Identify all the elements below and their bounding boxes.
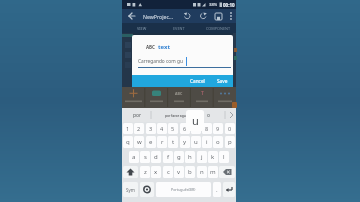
button[interactable]: p [225, 136, 235, 148]
staticText: g [177, 153, 181, 161]
staticText: NewProjec... [143, 13, 174, 20]
button[interactable]: s [140, 151, 150, 163]
button[interactable]: c [163, 166, 173, 178]
button[interactable]: ABC [170, 88, 188, 98]
staticText: i [206, 138, 208, 146]
staticText: o [216, 138, 220, 146]
button[interactable]: VIEW [133, 24, 151, 32]
button[interactable]: z [140, 166, 150, 178]
button[interactable]: u [191, 136, 201, 148]
button[interactable]: o [213, 136, 223, 148]
staticText: m [210, 168, 216, 176]
button[interactable] [212, 10, 224, 23]
button[interactable]: Cancel [185, 75, 209, 87]
button[interactable]: r [157, 136, 167, 148]
staticText: text [158, 43, 171, 51]
button[interactable]: EVENT [168, 24, 190, 32]
button[interactable]: Save [214, 75, 230, 87]
staticText: ABC [146, 44, 155, 50]
button[interactable]: m [208, 166, 218, 178]
button[interactable]: b [185, 166, 195, 178]
staticText: o [207, 112, 211, 119]
button[interactable] [223, 182, 235, 197]
button[interactable]: g [174, 151, 184, 163]
button[interactable]: k [208, 151, 218, 163]
button[interactable]: T [195, 88, 209, 98]
staticText: 3 [149, 125, 153, 132]
button[interactable]: Sym [123, 182, 138, 197]
button[interactable] [140, 182, 154, 197]
staticText: 8 [205, 125, 209, 132]
button[interactable] [226, 10, 236, 23]
button[interactable]: 7 [191, 123, 201, 134]
staticText: x [154, 168, 158, 176]
staticText: 9 [216, 125, 220, 132]
staticText: s [144, 153, 147, 161]
button[interactable]: 3 [146, 123, 156, 134]
staticText: p [228, 138, 232, 146]
button[interactable]: 8 [202, 123, 212, 134]
button[interactable]: 9 [213, 123, 223, 134]
staticText: h [188, 153, 192, 161]
staticText: f [167, 153, 170, 161]
staticText: u [192, 113, 199, 128]
staticText: EVENT [173, 26, 185, 31]
button[interactable]: q [123, 136, 133, 148]
staticText: T [201, 90, 204, 97]
button[interactable]: w [134, 136, 144, 148]
button[interactable]: n [197, 166, 207, 178]
staticText: Carregando com gu [138, 58, 183, 65]
button[interactable]: e [146, 136, 156, 148]
staticText: w [137, 138, 142, 146]
button[interactable]: 1 [123, 123, 133, 134]
button[interactable] [197, 10, 209, 23]
button[interactable]: o [203, 109, 215, 121]
staticText: 00:10 [223, 2, 235, 8]
button[interactable] [219, 166, 235, 178]
staticText: ABC [175, 91, 183, 96]
button[interactable]: 2 [134, 123, 144, 134]
staticText: d [154, 153, 158, 161]
staticText: n [200, 168, 204, 176]
button[interactable]: . [213, 182, 221, 197]
staticText: b [188, 168, 192, 176]
button[interactable]: COMPONENT [202, 24, 234, 32]
staticText: VIEW [137, 26, 147, 31]
button[interactable]: t [168, 136, 178, 148]
button[interactable]: 4 [157, 123, 167, 134]
button[interactable]: 5 [168, 123, 178, 134]
button[interactable]: i [202, 136, 212, 148]
button[interactable] [123, 166, 138, 178]
button[interactable]: l [219, 151, 229, 163]
staticText: 2 [137, 125, 141, 132]
button[interactable]: d [151, 151, 161, 163]
button[interactable] [181, 10, 193, 23]
staticText: . [216, 186, 218, 194]
staticText: c [167, 168, 170, 176]
staticText: q [126, 138, 130, 146]
staticText: Cancel [190, 78, 205, 84]
button[interactable]: Português(BR) [156, 182, 211, 197]
button[interactable]: x [151, 166, 161, 178]
staticText: y [183, 138, 187, 146]
button[interactable]: j [197, 151, 207, 163]
staticText: z [144, 168, 147, 176]
staticText: t [172, 138, 175, 146]
button[interactable]: f [163, 151, 173, 163]
button[interactable]: 0 [225, 123, 235, 134]
button[interactable]: por favor aguard [152, 109, 204, 121]
staticText: Sym [126, 187, 135, 193]
button[interactable]: 6 [180, 123, 190, 134]
staticText: por [133, 112, 142, 119]
button[interactable]: NewProjec... [143, 10, 183, 22]
staticText: 6 [183, 125, 187, 132]
button[interactable] [126, 10, 138, 23]
staticText: 38% [209, 2, 218, 8]
button[interactable]: v [174, 166, 184, 178]
button[interactable]: y [180, 136, 190, 148]
button[interactable]: por [128, 109, 146, 121]
button[interactable]: a [129, 151, 139, 163]
button[interactable]: h [185, 151, 195, 163]
staticText: j [201, 153, 203, 161]
